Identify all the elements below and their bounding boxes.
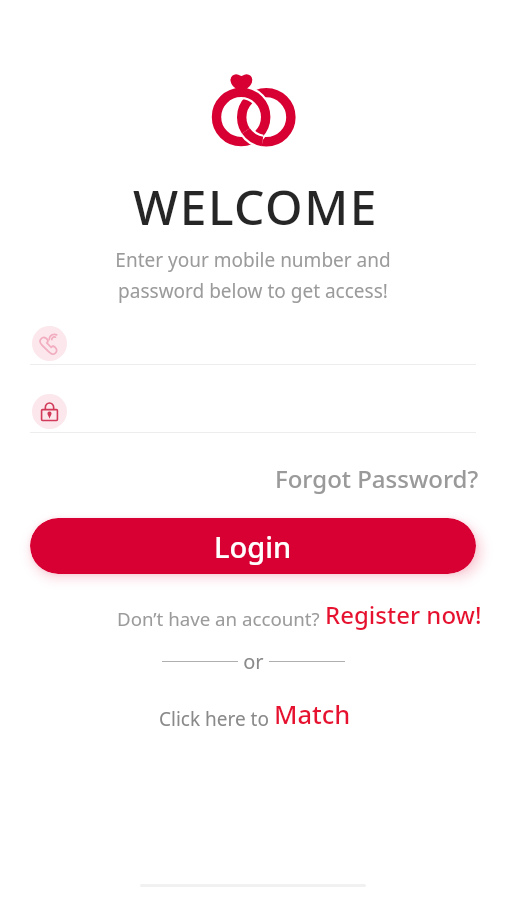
staticText: Register now! bbox=[325, 598, 482, 631]
button[interactable]: Mobile number bbox=[32, 326, 67, 361]
staticText: Forgot Password? bbox=[275, 462, 479, 495]
button[interactable]: Match bbox=[274, 697, 351, 732]
staticText: Click here to bbox=[159, 706, 274, 732]
button[interactable]: Login bbox=[30, 518, 476, 574]
staticText: Login bbox=[214, 527, 292, 566]
staticText: or bbox=[238, 648, 269, 675]
button[interactable]: Password bbox=[32, 394, 67, 429]
staticText: WELCOME bbox=[133, 174, 379, 239]
staticText: Match bbox=[274, 697, 351, 732]
button[interactable]: Forgot Password? bbox=[275, 462, 479, 495]
staticText: Don’t have an account? bbox=[117, 606, 325, 631]
staticText: Enter your mobile number and password be… bbox=[115, 247, 391, 303]
button[interactable]: Register now! bbox=[325, 598, 482, 631]
